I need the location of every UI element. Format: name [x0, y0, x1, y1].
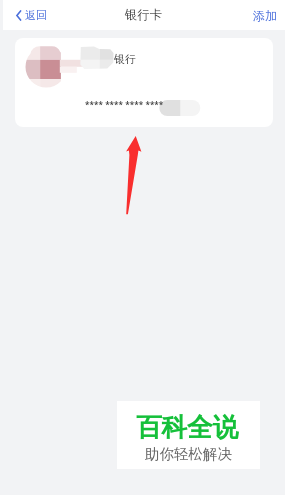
other: Back	[16, 10, 21, 21]
staticText: 助你轻松解决	[145, 445, 232, 463]
button[interactable]: 添加	[241, 2, 285, 29]
button[interactable]: Back	[3, 3, 57, 27]
staticText: 添加	[253, 8, 277, 23]
staticText: 银行	[114, 52, 136, 66]
staticText: 返回	[25, 8, 47, 22]
button[interactable]: 银行	[15, 38, 273, 127]
staticText: 百科全说	[136, 411, 239, 443]
staticText: 银行卡	[125, 7, 163, 23]
staticText: **** **** **** ****	[85, 99, 164, 110]
